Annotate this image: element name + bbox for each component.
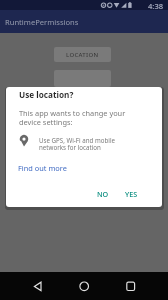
staticText: Find out more — [18, 163, 67, 173]
staticText: YES — [125, 189, 138, 199]
button[interactable]: Find out more — [16, 161, 69, 175]
staticText: This app wants to change your device set… — [19, 108, 126, 127]
staticText: Use GPS, Wi-Fi and mobile networks for l… — [39, 136, 115, 152]
staticText: 4:38 — [148, 1, 164, 11]
button[interactable]: LOCATION — [54, 47, 111, 62]
button[interactable]: YES — [119, 183, 144, 205]
button[interactable]: NO — [91, 183, 115, 205]
staticText: LOCATION — [66, 51, 99, 59]
staticText: NO — [97, 189, 109, 199]
staticText: Use location? — [19, 89, 74, 100]
staticText: RuntimePermissions — [5, 17, 79, 27]
